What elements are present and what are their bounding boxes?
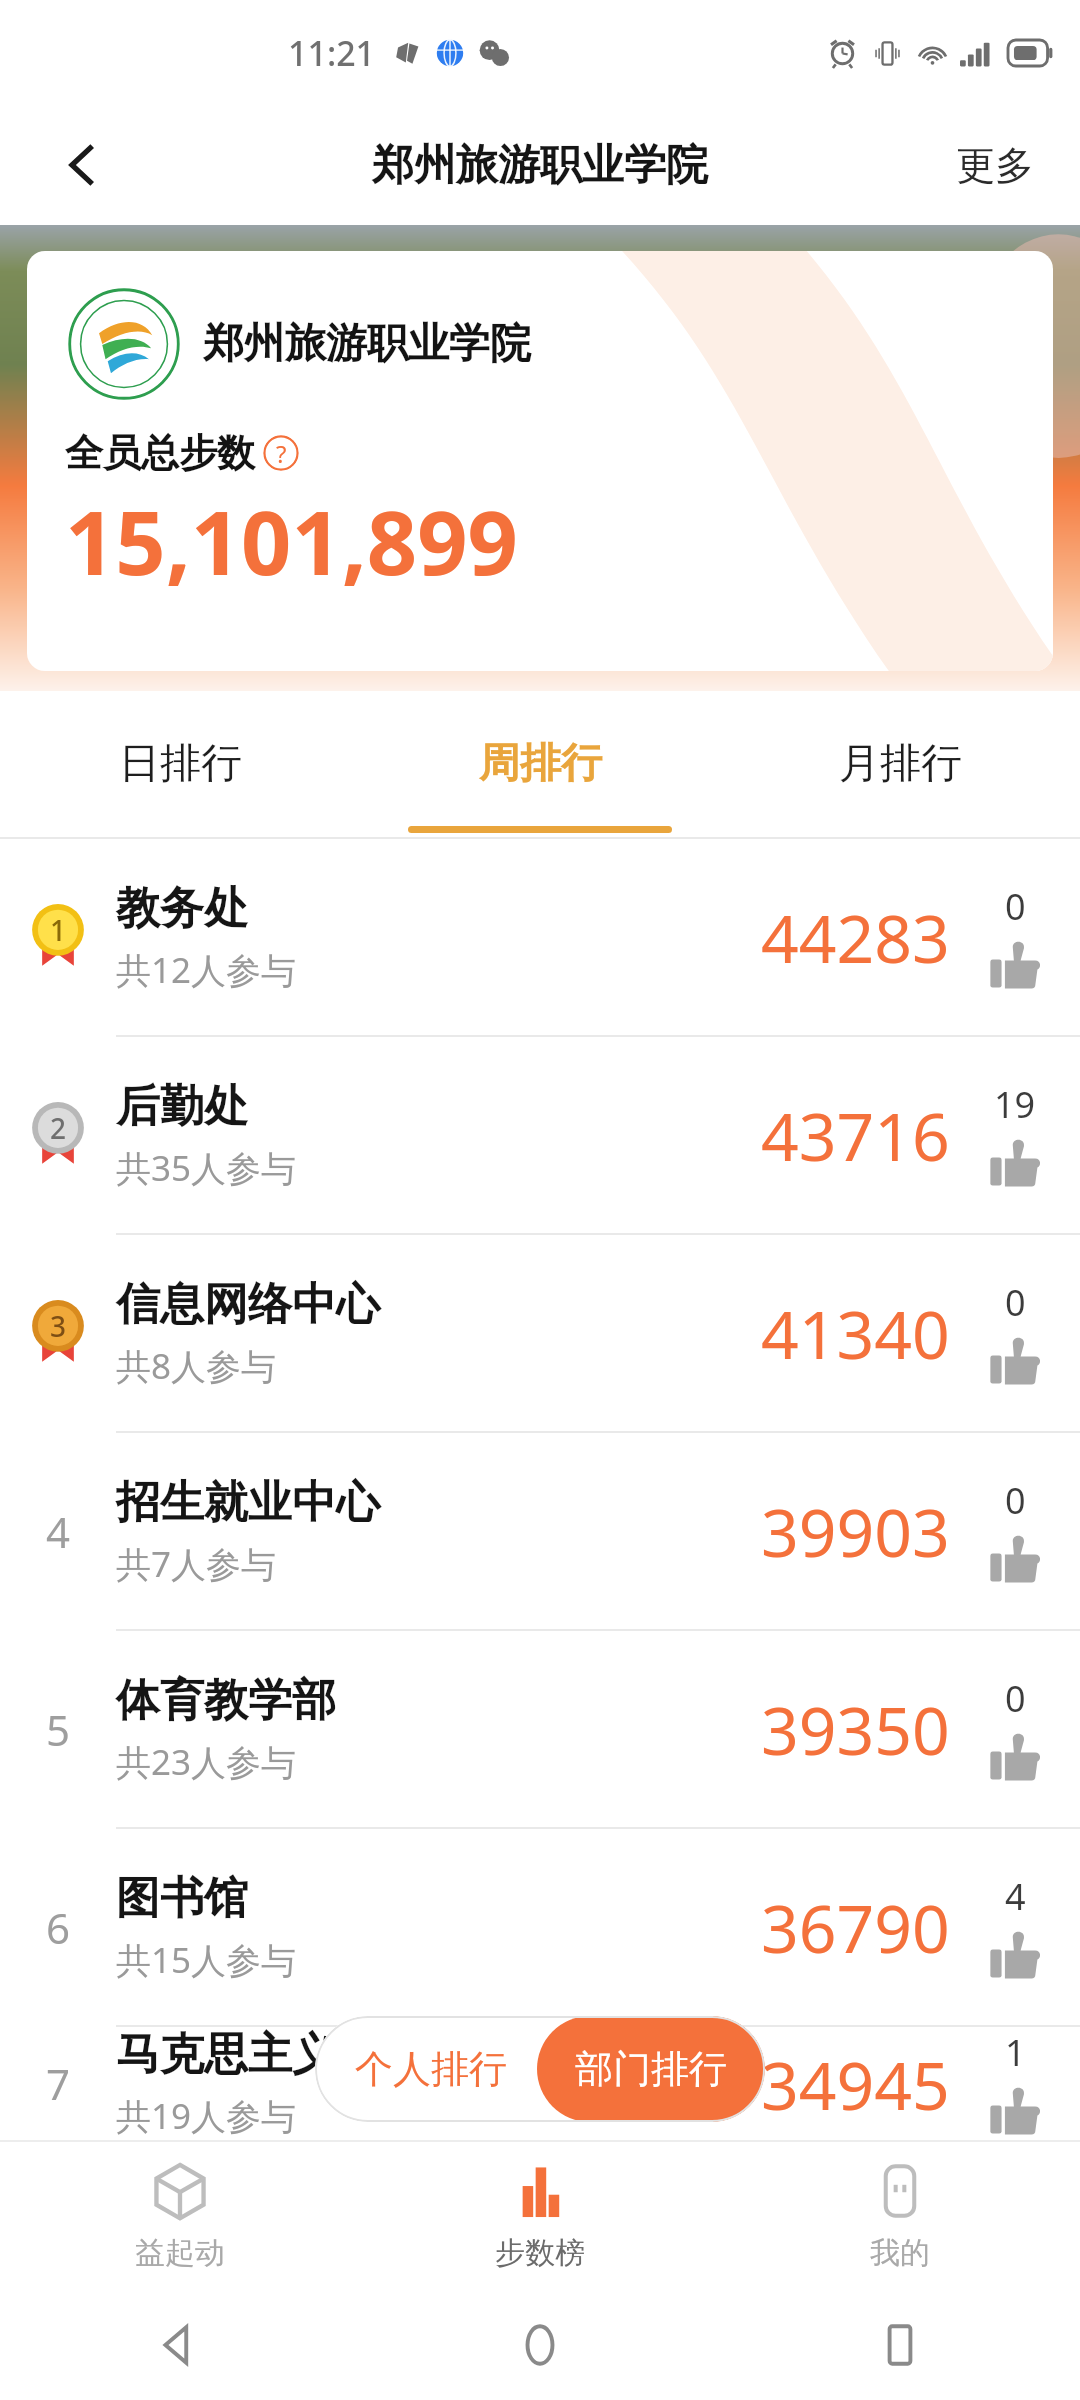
button[interactable]: 部门排行 (537, 2016, 765, 2122)
staticText: 1 (1005, 2028, 1026, 2077)
button[interactable]: Like 教务处 (950, 839, 1080, 1035)
staticText: 0 (1005, 1476, 1026, 1525)
staticText: 2 (50, 1109, 67, 1147)
button[interactable]: Like 马克思主义学院 (950, 2027, 1080, 2140)
staticText: 共15人参与 (116, 1936, 297, 1984)
staticText: 4 (46, 1503, 71, 1560)
button[interactable]: 7 (0, 2027, 1080, 2140)
staticText: 共19人参与 (116, 2092, 297, 2140)
button[interactable]: 日排行 (0, 691, 360, 837)
staticText: 步数榜 (495, 2234, 585, 2272)
staticText: 共8人参与 (116, 1342, 277, 1390)
button[interactable]: About total steps (263, 435, 299, 471)
staticText: 11:21 (288, 30, 376, 76)
button[interactable]: Recents (720, 2290, 1080, 2400)
staticText: 更多 (956, 141, 1034, 190)
button[interactable]: 3 (0, 1235, 1080, 1433)
staticText: 招生就业中心 (116, 1475, 380, 1530)
staticText: 36790 (761, 1882, 950, 1972)
staticText: 个人排行 (355, 2045, 507, 2093)
staticText: 0 (1005, 882, 1026, 931)
staticText: 4 (1005, 1872, 1026, 1921)
staticText: 19 (994, 1080, 1036, 1129)
button[interactable]: 更多 (942, 131, 1048, 200)
staticText: 体育教学部 (116, 1673, 336, 1728)
button[interactable]: 步数榜 (360, 2142, 720, 2290)
staticText: 日排行 (119, 738, 242, 790)
button[interactable]: 1 (0, 839, 1080, 1037)
button[interactable]: Like 图书馆 (950, 1829, 1080, 2025)
staticText: 7 (46, 2055, 71, 2112)
button[interactable]: Like 招生就业中心 (950, 1433, 1080, 1629)
button[interactable]: 益起动 (0, 2142, 360, 2290)
button[interactable]: Back (40, 122, 126, 208)
staticText: 1 (50, 911, 67, 949)
staticText: 图书馆 (116, 1871, 248, 1926)
staticText: 0 (1005, 1278, 1026, 1327)
staticText: 郑州旅游职业学院 (372, 139, 708, 192)
staticText: 我的 (870, 2234, 930, 2272)
button[interactable]: 周排行 (360, 691, 720, 837)
staticText: 信息网络中心 (116, 1277, 380, 1332)
button[interactable]: Home (360, 2290, 720, 2400)
staticText: 益起动 (135, 2234, 225, 2272)
staticText: 39350 (761, 1684, 950, 1774)
staticText: 部门排行 (575, 2045, 727, 2093)
button[interactable]: 4 (0, 1433, 1080, 1631)
staticText: 39903 (761, 1486, 950, 1576)
staticText: 34945 (761, 2039, 950, 2129)
staticText: 41340 (761, 1288, 950, 1378)
button[interactable]: 我的 (720, 2142, 1080, 2290)
staticText: ? (276, 437, 287, 470)
button[interactable]: Like 后勤处 (950, 1037, 1080, 1233)
staticText: 共12人参与 (116, 946, 297, 994)
staticText: 6 (46, 1899, 71, 1956)
staticText: 月排行 (839, 738, 962, 790)
button[interactable]: 个人排行 (315, 2016, 537, 2122)
staticText: 教务处 (116, 881, 248, 936)
staticText: 44283 (761, 892, 950, 982)
staticText: 共35人参与 (116, 1144, 297, 1192)
staticText: 3 (50, 1307, 67, 1345)
staticText: 周排行 (479, 738, 602, 790)
staticText: 43716 (761, 1090, 950, 1180)
button[interactable]: Like 体育教学部 (950, 1631, 1080, 1827)
staticText: 15,101,899 (65, 481, 518, 601)
staticText: 5 (46, 1701, 71, 1758)
staticText: 马克思主义学院 (116, 2027, 424, 2082)
staticText: 郑州旅游职业学院 (203, 318, 531, 370)
staticText: 0 (1005, 1674, 1026, 1723)
staticText: 共7人参与 (116, 1540, 277, 1588)
staticText: 全员总步数 (65, 429, 255, 477)
button[interactable]: 月排行 (720, 691, 1080, 837)
button[interactable]: Like 信息网络中心 (950, 1235, 1080, 1431)
button[interactable]: 6 (0, 1829, 1080, 2027)
button[interactable]: 2 (0, 1037, 1080, 1235)
staticText: 后勤处 (116, 1079, 248, 1134)
button[interactable]: Back (0, 2290, 360, 2400)
staticText: 共23人参与 (116, 1738, 297, 1786)
button[interactable]: 5 (0, 1631, 1080, 1829)
